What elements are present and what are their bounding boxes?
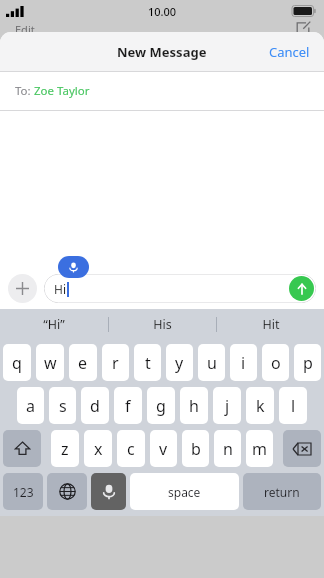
staticText: z: [61, 438, 69, 460]
button[interactable]: Hit: [217, 309, 324, 339]
button[interactable]: d: [81, 387, 109, 424]
staticText: 123: [13, 484, 34, 500]
button[interactable]: Send: [289, 276, 314, 301]
button[interactable]: x: [84, 430, 112, 467]
button[interactable]: g: [147, 387, 175, 424]
staticText: Hi: [54, 281, 66, 297]
button[interactable]: “Hi”: [0, 309, 108, 339]
button[interactable]: k: [246, 387, 274, 424]
button[interactable]: Hi: [44, 274, 316, 303]
button[interactable]: l: [279, 387, 307, 424]
staticText: return: [264, 484, 300, 500]
staticText: f: [125, 395, 131, 417]
button[interactable]: o: [262, 344, 289, 381]
staticText: n: [223, 438, 233, 460]
button[interactable]: c: [117, 430, 145, 467]
staticText: u: [207, 352, 217, 374]
staticText: Edit: [15, 22, 35, 37]
staticText: a: [26, 395, 35, 417]
button[interactable]: f: [114, 387, 142, 424]
staticText: x: [94, 438, 103, 460]
button[interactable]: q: [3, 344, 31, 381]
staticText: Cancel: [269, 43, 310, 61]
staticText: g: [156, 395, 166, 417]
button[interactable]: s: [49, 387, 76, 424]
staticText: Hit: [262, 316, 280, 333]
staticText: 10.00: [148, 4, 177, 19]
button[interactable]: u: [198, 344, 225, 381]
button[interactable]: Shift: [3, 430, 41, 467]
button[interactable]: 123: [3, 473, 43, 510]
staticText: i: [241, 352, 246, 374]
staticText: t: [145, 352, 151, 374]
button[interactable]: Cancel: [255, 35, 324, 69]
staticText: h: [189, 395, 199, 417]
button[interactable]: r: [102, 344, 129, 381]
button[interactable]: His: [109, 309, 216, 339]
staticText: w: [44, 352, 57, 374]
button[interactable]: space: [130, 473, 239, 510]
staticText: p: [303, 352, 313, 374]
staticText: q: [12, 352, 22, 374]
button[interactable]: m: [246, 430, 273, 467]
staticText: b: [191, 438, 201, 460]
button[interactable]: t: [134, 344, 161, 381]
staticText: j: [225, 395, 230, 417]
staticText: k: [256, 395, 265, 417]
button[interactable]: i: [230, 344, 257, 381]
button[interactable]: Voice input: [91, 473, 126, 510]
staticText: space: [168, 484, 201, 500]
staticText: r: [112, 352, 119, 374]
staticText: His: [153, 316, 172, 333]
staticText: y: [175, 352, 184, 374]
button[interactable]: j: [213, 387, 241, 424]
staticText: m: [252, 438, 267, 460]
staticText: v: [159, 438, 168, 460]
button[interactable]: n: [214, 430, 241, 467]
staticText: e: [78, 352, 88, 374]
button[interactable]: z: [51, 430, 79, 467]
button[interactable]: e: [69, 344, 97, 381]
button[interactable]: w: [36, 344, 64, 381]
staticText: New Message: [117, 43, 207, 61]
staticText: s: [59, 395, 67, 417]
staticText: To:: [15, 83, 34, 99]
button[interactable]: return: [243, 473, 321, 510]
staticText: d: [90, 395, 100, 417]
button[interactable]: Dictation: [58, 256, 89, 278]
button[interactable]: v: [150, 430, 177, 467]
button[interactable]: Backspace: [283, 430, 321, 467]
button[interactable]: To:: [0, 72, 324, 110]
button[interactable]: y: [166, 344, 193, 381]
button[interactable]: p: [294, 344, 321, 381]
staticText: Zoe Taylor: [34, 83, 90, 99]
button[interactable]: b: [182, 430, 209, 467]
button[interactable]: h: [180, 387, 208, 424]
staticText: l: [291, 395, 296, 417]
staticText: “Hi”: [43, 316, 65, 333]
button[interactable]: Switch keyboard: [47, 473, 87, 510]
staticText: o: [271, 352, 281, 374]
button[interactable]: Add attachment: [8, 274, 37, 303]
staticText: c: [127, 438, 135, 460]
button[interactable]: a: [17, 387, 44, 424]
